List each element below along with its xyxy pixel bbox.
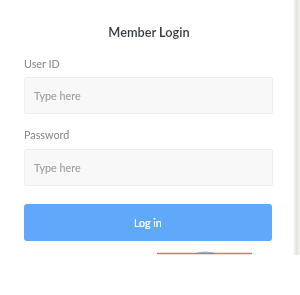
staticText: Type here	[34, 89, 81, 102]
staticText: Member Login	[0, 24, 299, 39]
staticText: Type here	[34, 161, 81, 174]
button[interactable]: Log in	[24, 204, 272, 241]
staticText: Log in	[134, 217, 162, 230]
staticText: Password	[24, 128, 70, 141]
button[interactable]: Type here	[24, 77, 273, 114]
button[interactable]: Type here	[24, 149, 273, 186]
staticText: User ID	[24, 57, 60, 70]
